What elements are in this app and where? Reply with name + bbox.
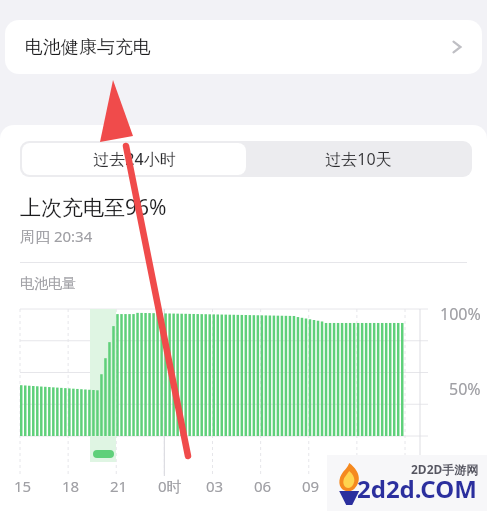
button[interactable]: 过去24小时 <box>22 143 246 175</box>
button[interactable]: 电池健康与充电 <box>5 20 482 74</box>
staticText: 过去10天 <box>325 148 392 170</box>
staticText: 12 <box>350 476 368 496</box>
staticText: 15 <box>14 476 32 496</box>
staticText: 上次充电至96% <box>20 193 167 222</box>
staticText: 03 <box>206 476 224 496</box>
staticText: 2d2d.COM <box>357 472 477 505</box>
staticText: 0时 <box>158 476 182 496</box>
staticText: 过去24小时 <box>93 148 176 170</box>
staticText: 21 <box>110 476 128 496</box>
staticText: 06 <box>254 476 272 496</box>
staticText: 2D2D手游网 <box>411 461 479 477</box>
staticText: 18 <box>62 476 80 496</box>
staticText: 100% <box>440 303 481 325</box>
staticText: 电池健康与充电 <box>25 36 151 59</box>
staticText: 09 <box>302 476 320 496</box>
button[interactable]: 过去10天 <box>246 143 470 175</box>
staticText: 50% <box>449 378 481 400</box>
staticText: 电池电量 <box>20 275 76 293</box>
staticText: 0% <box>458 453 481 475</box>
staticText: 周四 20:34 <box>20 226 93 246</box>
